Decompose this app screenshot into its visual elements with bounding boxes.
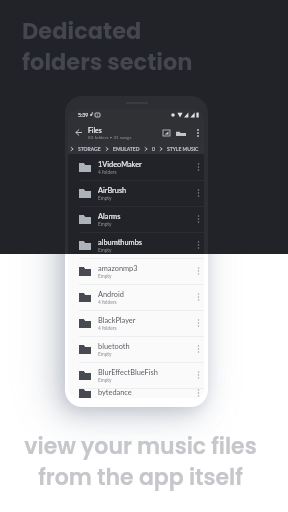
staticText: Android — [98, 290, 124, 299]
staticText: Empty — [98, 351, 112, 357]
button[interactable]: More options for 1VideoMaker — [192, 161, 204, 173]
button[interactable]: More options for bytedance — [192, 388, 204, 398]
button[interactable]: AirBrush — [68, 180, 204, 206]
button[interactable]: More options for BlurEffectBlueFish — [192, 369, 204, 381]
staticText: 4 folders — [98, 299, 117, 305]
staticText: 4 folders — [98, 169, 117, 175]
button[interactable]: Alarms — [68, 206, 204, 232]
button[interactable]: More options for BlackPlayer — [192, 317, 204, 329]
button[interactable]: More options for amazonmp3 — [192, 265, 204, 277]
button[interactable]: 1VideoMaker — [68, 154, 204, 180]
staticText: BlackPlayer — [98, 316, 136, 325]
button[interactable]: Back — [71, 125, 86, 139]
button[interactable]: New folder — [174, 126, 188, 139]
button[interactable]: More options for albumthumbs — [192, 239, 204, 251]
staticText: Empty — [98, 273, 112, 279]
staticText: Empty — [98, 221, 112, 227]
staticText: bluetooth — [98, 342, 130, 351]
staticText: amazonmp3 — [98, 264, 138, 273]
button[interactable]: 1VideoMaker — [68, 154, 204, 180]
button[interactable]: More options for AirBrush — [192, 187, 204, 199]
staticText: 5:39 — [78, 112, 89, 118]
button[interactable]: BlackPlayer — [68, 310, 204, 336]
staticText: STORAGE — [78, 146, 101, 152]
button[interactable]: STORAGE — [77, 146, 102, 152]
button[interactable]: More options for Alarms — [192, 213, 204, 225]
staticText: bytedance — [98, 388, 132, 397]
button[interactable]: STYLE MUSIC — [166, 146, 200, 152]
button[interactable]: Cast — [159, 126, 173, 139]
button[interactable]: STYLE MUSIC — [166, 146, 200, 152]
staticText: Empty — [98, 221, 112, 227]
staticText: BlurEffectBlueFish — [98, 368, 158, 377]
button[interactable]: STORAGE — [77, 146, 102, 152]
staticText: Empty — [98, 377, 112, 383]
staticText: 83 folders • 31 songs — [88, 134, 132, 140]
button[interactable]: EMULATED — [112, 146, 141, 152]
staticText: Empty — [98, 273, 112, 279]
staticText: albumthumbs — [98, 238, 143, 247]
button[interactable]: Android — [68, 284, 204, 310]
staticText: 4 folders — [98, 325, 117, 331]
staticText: 4 folders — [98, 169, 117, 175]
staticText: 1VideoMaker — [98, 160, 142, 169]
button[interactable]: More options for Android — [192, 291, 204, 303]
staticText: from the app itself — [38, 462, 243, 493]
staticText: 0 — [152, 146, 155, 152]
button[interactable]: BlurEffectBlueFish — [68, 362, 204, 388]
staticText: bytedance — [98, 388, 132, 397]
button[interactable]: More options for 1VideoMaker — [192, 161, 204, 173]
button[interactable]: albumthumbs — [68, 232, 204, 258]
button[interactable]: 0 — [151, 146, 156, 152]
button[interactable]: albumthumbs — [68, 232, 204, 258]
button[interactable]: 0 — [151, 146, 156, 152]
button[interactable]: More options for bluetooth — [192, 343, 204, 355]
button[interactable]: Alarms — [68, 206, 204, 232]
button[interactable]: More options for BlurEffectBlueFish — [192, 369, 204, 381]
button[interactable]: New folder — [174, 126, 188, 139]
button[interactable]: More options for AirBrush — [192, 187, 204, 199]
button[interactable]: EMULATED — [112, 146, 141, 152]
button[interactable]: More options for bluetooth — [192, 343, 204, 355]
staticText: 83 folders • 31 songs — [88, 134, 132, 140]
button[interactable]: More options for Alarms — [192, 213, 204, 225]
button[interactable]: More options for bytedance — [192, 388, 204, 398]
button[interactable]: More options for amazonmp3 — [192, 265, 204, 277]
button[interactable]: Back — [71, 125, 86, 139]
button[interactable]: More options — [191, 126, 204, 139]
staticText: 1VideoMaker — [98, 160, 142, 169]
staticText: EMULATED — [113, 146, 140, 152]
staticText: 4 folders — [98, 325, 117, 331]
staticText: albumthumbs — [98, 238, 143, 247]
staticText: 5:39 — [78, 112, 89, 118]
staticText: 0 — [152, 146, 155, 152]
button[interactable]: Android — [68, 284, 204, 310]
staticText: Empty — [98, 195, 112, 201]
staticText: Alarms — [98, 212, 121, 221]
button[interactable]: amazonmp3 — [68, 258, 204, 284]
staticText: STORAGE — [78, 146, 101, 152]
button[interactable]: Cast — [159, 126, 173, 139]
button[interactable]: More options — [191, 126, 204, 139]
button[interactable]: bluetooth — [68, 336, 204, 362]
staticText: amazonmp3 — [98, 264, 138, 273]
staticText: BlurEffectBlueFish — [98, 368, 158, 377]
button[interactable]: More options for BlackPlayer — [192, 317, 204, 329]
button[interactable]: bluetooth — [68, 336, 204, 362]
button[interactable]: AirBrush — [68, 180, 204, 206]
button[interactable]: More options for Android — [192, 291, 204, 303]
staticText: Files — [88, 126, 102, 134]
staticText: Dedicated — [22, 15, 142, 46]
staticText: Empty — [98, 247, 112, 253]
staticText: BlackPlayer — [98, 316, 136, 325]
staticText: Empty — [98, 351, 112, 357]
staticText: Empty — [98, 377, 112, 383]
button[interactable]: bytedance — [68, 388, 204, 398]
button[interactable]: BlackPlayer — [68, 310, 204, 336]
button[interactable]: bytedance — [68, 388, 204, 398]
button[interactable]: amazonmp3 — [68, 258, 204, 284]
staticText: EMULATED — [113, 146, 140, 152]
button[interactable]: More options for albumthumbs — [192, 239, 204, 251]
button[interactable]: BlurEffectBlueFish — [68, 362, 204, 388]
